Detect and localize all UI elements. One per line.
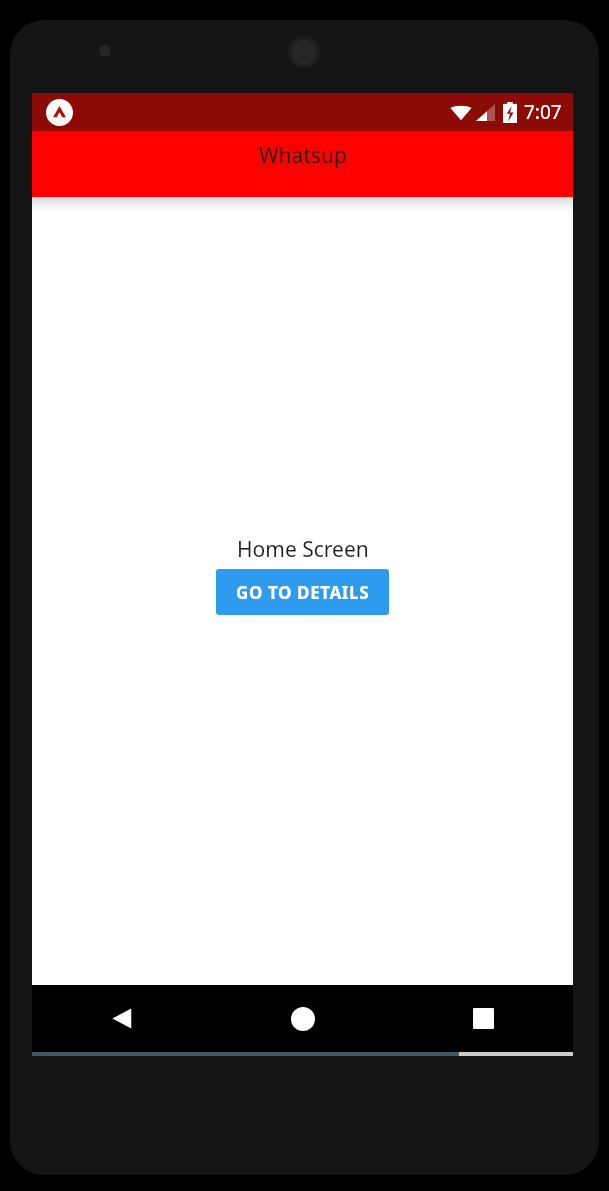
button[interactable]: Home <box>213 985 393 1052</box>
staticText: GO TO DETAILS <box>236 581 370 604</box>
staticText: Whatsup <box>259 141 347 170</box>
staticText: 7:07 <box>524 99 562 125</box>
button[interactable]: GO TO DETAILS <box>216 569 389 615</box>
staticText: Home Screen <box>237 535 369 564</box>
button[interactable]: Recent apps <box>393 985 573 1052</box>
button[interactable]: Back <box>32 985 213 1052</box>
